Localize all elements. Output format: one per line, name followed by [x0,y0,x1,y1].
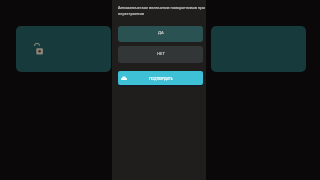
staticText: ДА [158,30,164,36]
staticText: НЕТ [157,51,165,57]
button[interactable]: НЕТ [118,46,203,63]
staticText: Автоматическое включение поворотников пр… [118,5,206,16]
button[interactable]: ДА [118,26,203,42]
staticText: ПОДТВЕРДИТЬ [149,76,173,80]
other: Vehicle [121,76,127,81]
button[interactable]: ПОДТВЕРДИТЬ [118,71,203,85]
other: Unlock [34,43,45,56]
button[interactable] [211,26,306,72]
button[interactable]: Unlock [16,26,111,72]
